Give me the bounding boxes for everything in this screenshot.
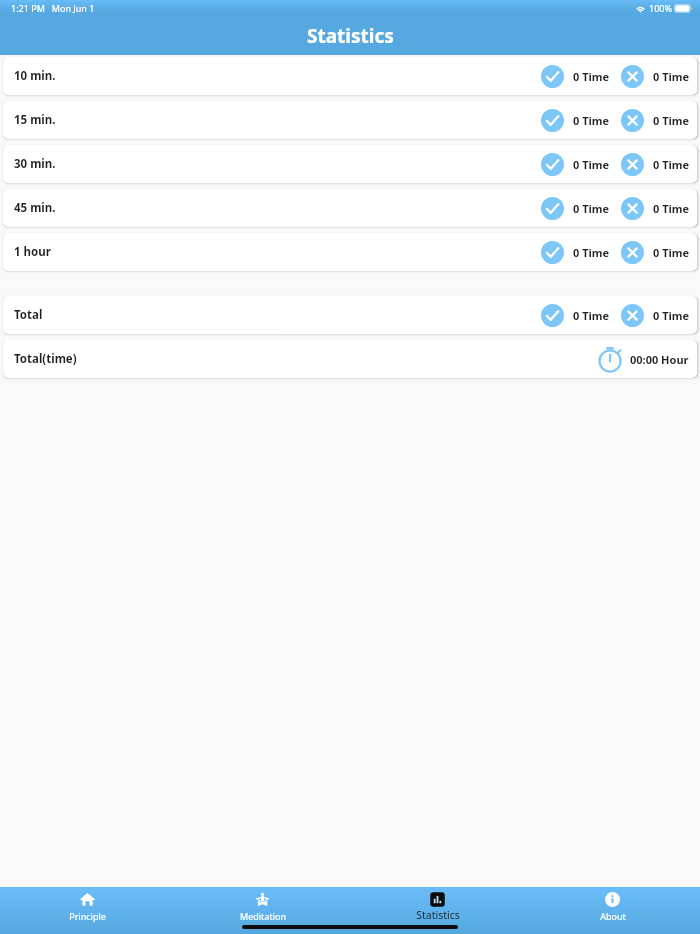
- staticText: 0 Time: [573, 201, 610, 216]
- button[interactable]: Meditation: [175, 887, 350, 934]
- staticText: 30 min.: [14, 156, 56, 172]
- staticText: 0 Time: [653, 157, 690, 172]
- staticText: 0 Time: [573, 69, 610, 84]
- staticText: 0 Time: [573, 157, 610, 172]
- button[interactable]: 10 min.: [3, 57, 697, 95]
- staticText: 1:21 PM Mon Jun 1: [11, 2, 95, 14]
- staticText: About: [600, 910, 626, 922]
- staticText: 0 Time: [573, 113, 610, 128]
- button[interactable]: 30 min.: [3, 145, 697, 183]
- staticText: 0 Time: [653, 308, 690, 323]
- staticText: 1 hour: [14, 244, 51, 260]
- staticText: Statistics: [307, 23, 394, 49]
- button[interactable]: About: [525, 887, 700, 934]
- button[interactable]: 45 min.: [3, 189, 697, 227]
- staticText: 0 Time: [653, 69, 690, 84]
- staticText: 0 Time: [653, 201, 690, 216]
- staticText: 0 Time: [653, 245, 690, 260]
- staticText: Meditation: [240, 910, 286, 922]
- staticText: Principle: [69, 910, 106, 922]
- staticText: 0 Time: [653, 113, 690, 128]
- staticText: 100%: [649, 2, 672, 14]
- staticText: 00:00 Hour: [630, 352, 689, 367]
- staticText: Statistics: [416, 908, 460, 922]
- staticText: 0 Time: [573, 245, 610, 260]
- staticText: 0 Time: [573, 308, 610, 323]
- staticText: 15 min.: [14, 112, 56, 128]
- staticText: 45 min.: [14, 200, 56, 216]
- button[interactable]: Total: [3, 296, 697, 334]
- staticText: Total(time): [14, 351, 77, 367]
- button[interactable]: 1 hour: [3, 233, 697, 271]
- staticText: Total: [14, 307, 43, 323]
- button[interactable]: Statistics: [350, 887, 525, 934]
- button[interactable]: Principle: [0, 887, 175, 934]
- button[interactable]: 15 min.: [3, 101, 697, 139]
- staticText: 10 min.: [14, 68, 56, 84]
- button[interactable]: Total(time): [3, 340, 697, 378]
